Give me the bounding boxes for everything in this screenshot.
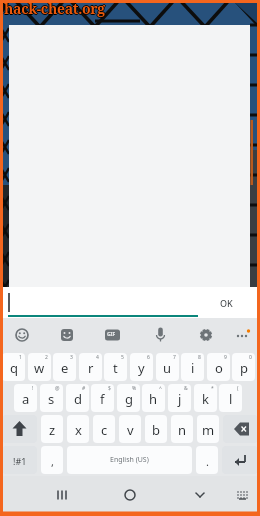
button[interactable]: f [91,384,114,412]
staticText: * [211,385,214,392]
staticText: d [74,390,82,408]
staticText: 5 [121,354,124,361]
button[interactable]: z [41,415,63,443]
button[interactable] [223,415,258,443]
staticText: z [49,421,56,439]
staticText: & [184,385,188,392]
staticText: l [229,390,233,408]
staticText: 1 [19,354,22,361]
staticText: ! [32,385,34,392]
staticText: r [88,359,94,377]
staticText: x [75,421,82,439]
button[interactable]: . [196,446,218,474]
staticText: 6 [147,354,150,361]
staticText: 0 [249,354,252,361]
button[interactable]: j [168,384,191,412]
staticText: GIF [107,331,116,338]
staticText: g [125,390,133,408]
button[interactable]: g [117,384,140,412]
staticText: @ [55,385,60,392]
staticText: hack-cheat.org [4,0,105,18]
staticText: ^ [159,385,162,392]
staticText: s [48,390,55,408]
button[interactable]: t [104,353,127,381]
staticText: t [113,359,118,377]
button[interactable]: y [130,353,153,381]
button[interactable]: h [142,384,165,412]
staticText: b [152,421,160,439]
staticText: v [127,421,134,439]
staticText: 7 [173,354,176,361]
staticText: ( [237,385,239,392]
button[interactable]: n [171,415,193,443]
staticText: hack-cheat.org [3,0,104,18]
staticText: m [202,421,215,439]
button[interactable]: r [79,353,102,381]
staticText: p [240,359,248,377]
staticText: . [206,454,209,469]
staticText: u [163,359,172,377]
staticText: q [10,359,18,377]
staticText: 8 [198,354,201,361]
button[interactable]: l [219,384,242,412]
button[interactable]: s [40,384,63,412]
staticText: hack-cheat.org [4,0,105,17]
button[interactable] [2,415,37,443]
button[interactable]: d [66,384,89,412]
staticText: $ [108,385,111,392]
button[interactable]: m [197,415,219,443]
staticText: f [100,390,105,408]
button[interactable]: , [41,446,63,474]
staticText: !#1 [13,455,27,467]
staticText: # [82,385,86,392]
staticText: % [132,385,137,392]
staticText: hack-cheat.org [5,0,106,18]
button[interactable]: p [232,353,255,381]
button[interactable]: w [28,353,51,381]
button[interactable] [222,446,258,474]
staticText: h [149,390,158,408]
button[interactable]: x [67,415,89,443]
staticText: 9 [224,354,227,361]
staticText: English (US) [110,455,149,465]
staticText: 4 [96,354,99,361]
staticText: j [178,390,182,408]
staticText: c [101,421,108,439]
staticText: i [191,359,195,377]
button[interactable]: e [53,353,76,381]
button[interactable]: o [207,353,230,381]
button[interactable]: b [145,415,167,443]
staticText: a [22,390,30,408]
staticText: w [34,359,45,377]
button[interactable]: a [14,384,37,412]
staticText: hack-cheat.org [4,0,105,19]
button[interactable]: v [119,415,141,443]
staticText: 3 [70,354,73,361]
staticText: , [51,454,54,469]
button[interactable]: English (US) [67,446,192,474]
button[interactable] [0,476,86,516]
staticText: n [178,421,187,439]
button[interactable]: k [194,384,217,412]
staticText: y [138,359,145,377]
button[interactable]: c [93,415,115,443]
button[interactable]: i [181,353,204,381]
staticText: o [215,359,223,377]
button[interactable]: !#1 [2,446,37,474]
button[interactable] [173,476,260,516]
button[interactable]: q [2,353,25,381]
staticText: OK [220,297,233,309]
button[interactable]: OK [0,287,260,318]
button[interactable]: u [156,353,179,381]
staticText: k [202,390,209,408]
staticText: e [61,359,69,377]
staticText: 2 [45,354,48,361]
button[interactable] [86,476,173,516]
